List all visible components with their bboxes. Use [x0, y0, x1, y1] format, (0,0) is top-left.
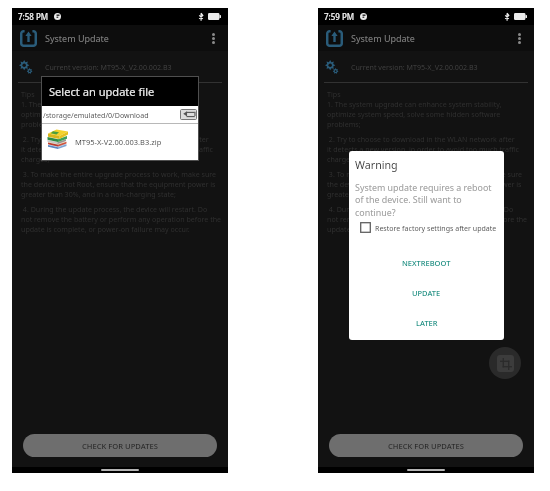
- button[interactable]: UPDATE: [349, 288, 504, 298]
- staticText: UPDATE: [412, 288, 441, 298]
- staticText: 3. To make the entire upgrade process to…: [21, 169, 217, 199]
- button[interactable]: System Update: [326, 30, 343, 47]
- staticText: 4. During the update process, the device…: [327, 204, 528, 234]
- staticText: Select an update file: [49, 84, 155, 99]
- button[interactable]: More options: [512, 31, 526, 45]
- staticText: Tips 1. The system upgrade can enhance s…: [327, 89, 502, 129]
- button[interactable]: System Update: [20, 30, 37, 47]
- button[interactable]: CHECK FOR UPDATES: [329, 434, 523, 457]
- staticText: 7:59 PM: [324, 11, 355, 22]
- button[interactable]: Up one level: [180, 109, 197, 120]
- staticText: Warning: [355, 158, 398, 173]
- staticText: 2. Try to choose to download in the WLAN…: [21, 134, 214, 164]
- staticText: LATER: [416, 318, 438, 328]
- staticText: System update requires a reboot of the d…: [355, 181, 499, 218]
- staticText: 2. Try to choose to download in the WLAN…: [327, 134, 520, 164]
- staticText: /storage/emulated/0/Download: [43, 110, 149, 120]
- staticText: Current version: MT95-X_V2.00.002.B3: [351, 62, 478, 72]
- button[interactable]: MT95-X-V2.00.003.B3.zip: [42, 124, 198, 160]
- staticText: Tips 1. The system upgrade can enhance s…: [21, 89, 196, 129]
- staticText: 7:58 PM: [18, 11, 49, 22]
- button[interactable]: More options: [206, 31, 220, 45]
- staticText: NEXTREBOOT: [402, 258, 451, 268]
- staticText: 3. To make the entire upgrade process to…: [327, 169, 523, 199]
- button[interactable]: CHECK FOR UPDATES: [23, 434, 217, 457]
- button[interactable]: LATER: [349, 318, 504, 328]
- button[interactable]: Screenshot: [489, 347, 521, 379]
- staticText: 4. During the update process, the device…: [21, 204, 222, 234]
- staticText: CHECK FOR UPDATES: [82, 441, 158, 451]
- button[interactable]: Restore factory settings after update: [349, 222, 504, 233]
- staticText: System Update: [45, 32, 109, 44]
- staticText: System Update: [351, 32, 415, 44]
- staticText: Current version: MT95-X_V2.00.002.B3: [45, 62, 172, 72]
- staticText: MT95-X-V2.00.003.B3.zip: [75, 137, 162, 147]
- button[interactable]: NEXTREBOOT: [349, 258, 504, 268]
- staticText: Restore factory settings after update: [375, 223, 497, 233]
- staticText: CHECK FOR UPDATES: [388, 441, 464, 451]
